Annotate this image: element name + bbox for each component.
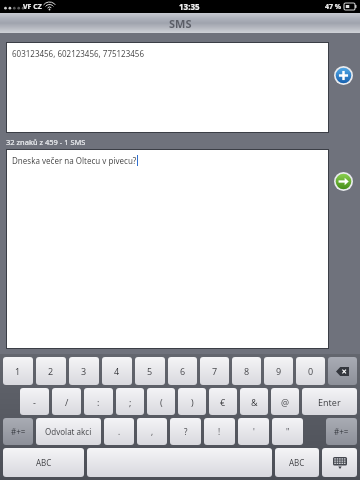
- staticText: 7: [212, 365, 218, 377]
- button[interactable]: ": [272, 418, 303, 445]
- staticText: Odvolat akci: [45, 426, 92, 437]
- staticText: 4: [114, 365, 120, 377]
- staticText: €: [220, 396, 226, 408]
- button[interactable]: 8: [232, 357, 261, 385]
- button[interactable]: 9: [264, 357, 293, 385]
- button[interactable]: #+=: [3, 418, 33, 445]
- staticText: &: [251, 396, 258, 408]
- button[interactable]: Send: [334, 172, 353, 191]
- button[interactable]: ,: [137, 418, 167, 445]
- button[interactable]: ;: [116, 388, 144, 415]
- button[interactable]: -: [20, 388, 49, 415]
- staticText: 8: [244, 365, 250, 377]
- staticText: 32 znaků z 459 - 1 SMS: [6, 137, 86, 147]
- button[interactable]: Backspace: [328, 357, 357, 385]
- button[interactable]: #+=: [326, 418, 357, 445]
- button[interactable]: Dneska večer na Oltecu v pivecu?: [6, 149, 329, 349]
- staticText: ;: [129, 396, 132, 408]
- button[interactable]: .: [104, 418, 134, 445]
- button[interactable]: 3: [69, 357, 99, 385]
- staticText: ): [191, 396, 194, 408]
- staticText: ": [286, 426, 290, 437]
- button[interactable]: Enter: [302, 388, 357, 415]
- staticText: @: [281, 396, 290, 408]
- button[interactable]: ABC: [275, 448, 319, 477]
- button[interactable]: !: [204, 418, 235, 445]
- button[interactable]: Hide keyboard: [322, 448, 357, 477]
- staticText: 3: [81, 365, 87, 377]
- staticText: 1: [15, 365, 21, 377]
- staticText: ,: [151, 426, 154, 437]
- button[interactable]: 5: [135, 357, 165, 385]
- button[interactable]: &: [240, 388, 268, 415]
- staticText: 0: [308, 365, 314, 377]
- button[interactable]: Add recipient: [334, 66, 353, 85]
- staticText: (: [160, 396, 163, 408]
- staticText: -: [33, 396, 36, 408]
- staticText: 5: [147, 365, 153, 377]
- staticText: ': [253, 426, 255, 437]
- staticText: VF CZ: [23, 2, 42, 12]
- staticText: :: [97, 396, 100, 408]
- button[interactable]: ': [238, 418, 269, 445]
- staticText: .: [118, 426, 121, 437]
- staticText: 47 %: [325, 2, 342, 12]
- button[interactable]: ?: [170, 418, 201, 445]
- button[interactable]: /: [52, 388, 81, 415]
- staticText: #+=: [11, 426, 26, 437]
- button[interactable]: 7: [200, 357, 229, 385]
- staticText: ABC: [289, 457, 305, 468]
- button[interactable]: 4: [102, 357, 132, 385]
- staticText: ?: [184, 426, 188, 437]
- button[interactable]: 1: [3, 357, 33, 385]
- button[interactable]: :: [84, 388, 113, 415]
- button[interactable]: ABC: [3, 448, 84, 477]
- staticText: 6: [180, 365, 186, 377]
- staticText: 2: [48, 365, 54, 377]
- button[interactable]: €: [209, 388, 237, 415]
- staticText: 9: [276, 365, 282, 377]
- button[interactable]: Odvolat akci: [36, 418, 101, 445]
- button[interactable]: 0: [296, 357, 325, 385]
- staticText: Dneska večer na Oltecu v pivecu?: [12, 155, 137, 166]
- button[interactable]: @: [271, 388, 299, 415]
- button[interactable]: (: [147, 388, 175, 415]
- button[interactable]: ): [178, 388, 206, 415]
- staticText: Enter: [318, 396, 341, 408]
- button[interactable]: [87, 448, 272, 477]
- staticText: !: [218, 426, 221, 437]
- staticText: 13:35: [179, 1, 200, 12]
- staticText: 603123456, 602123456, 775123456: [12, 48, 144, 59]
- staticText: #+=: [334, 426, 349, 437]
- staticText: ABC: [36, 457, 52, 468]
- button[interactable]: 2: [36, 357, 66, 385]
- button[interactable]: 6: [168, 357, 197, 385]
- staticText: SMS: [169, 16, 192, 31]
- staticText: /: [65, 396, 69, 408]
- button[interactable]: 603123456, 602123456, 775123456: [6, 42, 329, 133]
